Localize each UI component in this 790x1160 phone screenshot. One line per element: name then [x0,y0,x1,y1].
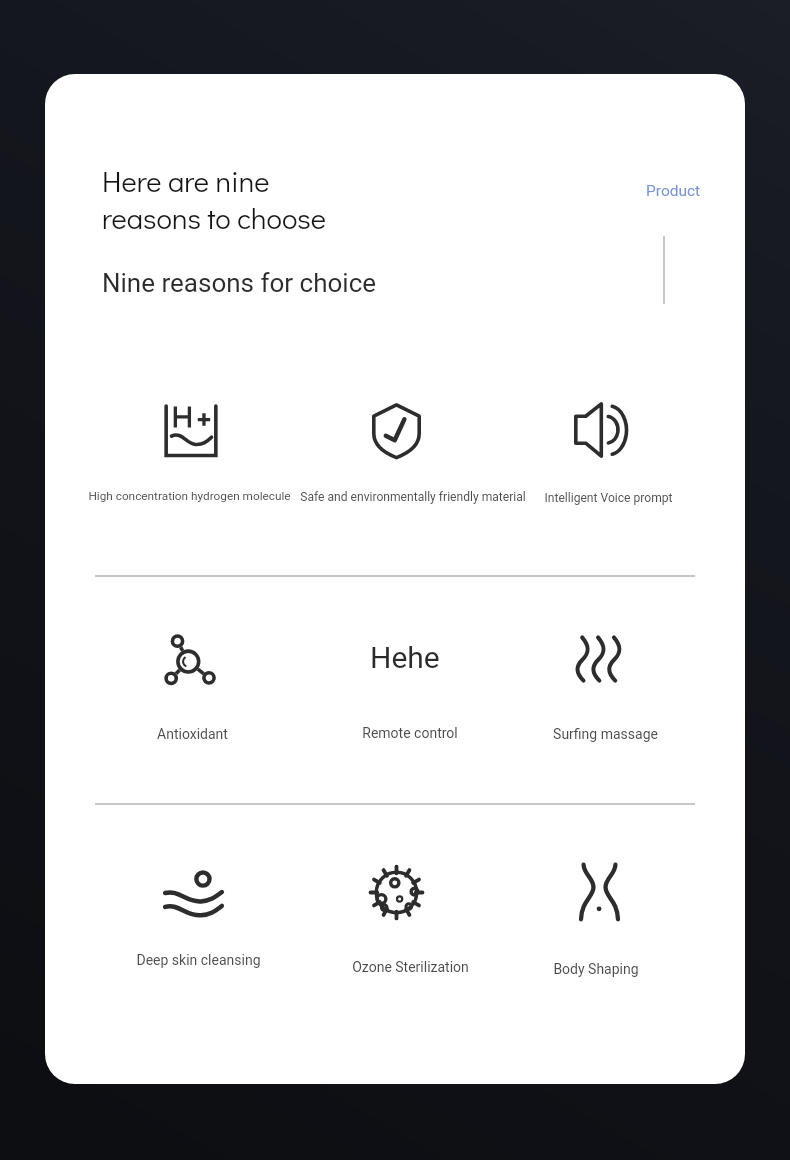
staticText: Body Shaping [553,961,639,977]
button[interactable]: Deep skin cleansing [153,853,233,933]
staticText: Antioxidant [157,726,228,742]
button[interactable]: Hydrogen water [151,391,231,471]
staticText: Intelligent Voice prompt [544,491,673,505]
button[interactable]: Ozone sterilization [356,852,436,932]
staticText: Safe and environmentally friendly materi… [300,490,526,504]
button[interactable]: Antioxidant [150,619,230,699]
staticText: Nine reasons for choice [102,268,377,298]
other: Surfing massage [575,635,621,683]
button[interactable]: Product [644,180,703,202]
other: Voice prompt [574,403,626,457]
staticText: Product [646,182,701,200]
staticText: Remote control [362,725,458,741]
button[interactable]: Surfing massage [558,619,638,699]
other: Safe material [371,403,422,459]
button[interactable]: Safe material [356,391,436,471]
staticText: Deep skin cleansing [136,952,261,968]
staticText: Ozone Sterilization [352,959,469,975]
other: Antioxidant [164,634,216,685]
staticText: Surfing massage [553,726,658,742]
staticText: Here are nine reasons to choose [102,162,327,236]
button[interactable]: Hehe [365,617,445,697]
other: Body shaping [578,863,621,921]
button[interactable]: Body shaping [559,852,639,932]
button[interactable]: Voice prompt [560,390,640,470]
staticText: High concentration hydrogen molecule [88,489,291,503]
other: Deep skin cleansing [163,869,224,917]
staticText: Hehe [370,640,440,675]
other: Ozone sterilization [368,864,425,921]
other: Hydrogen water [164,405,218,457]
